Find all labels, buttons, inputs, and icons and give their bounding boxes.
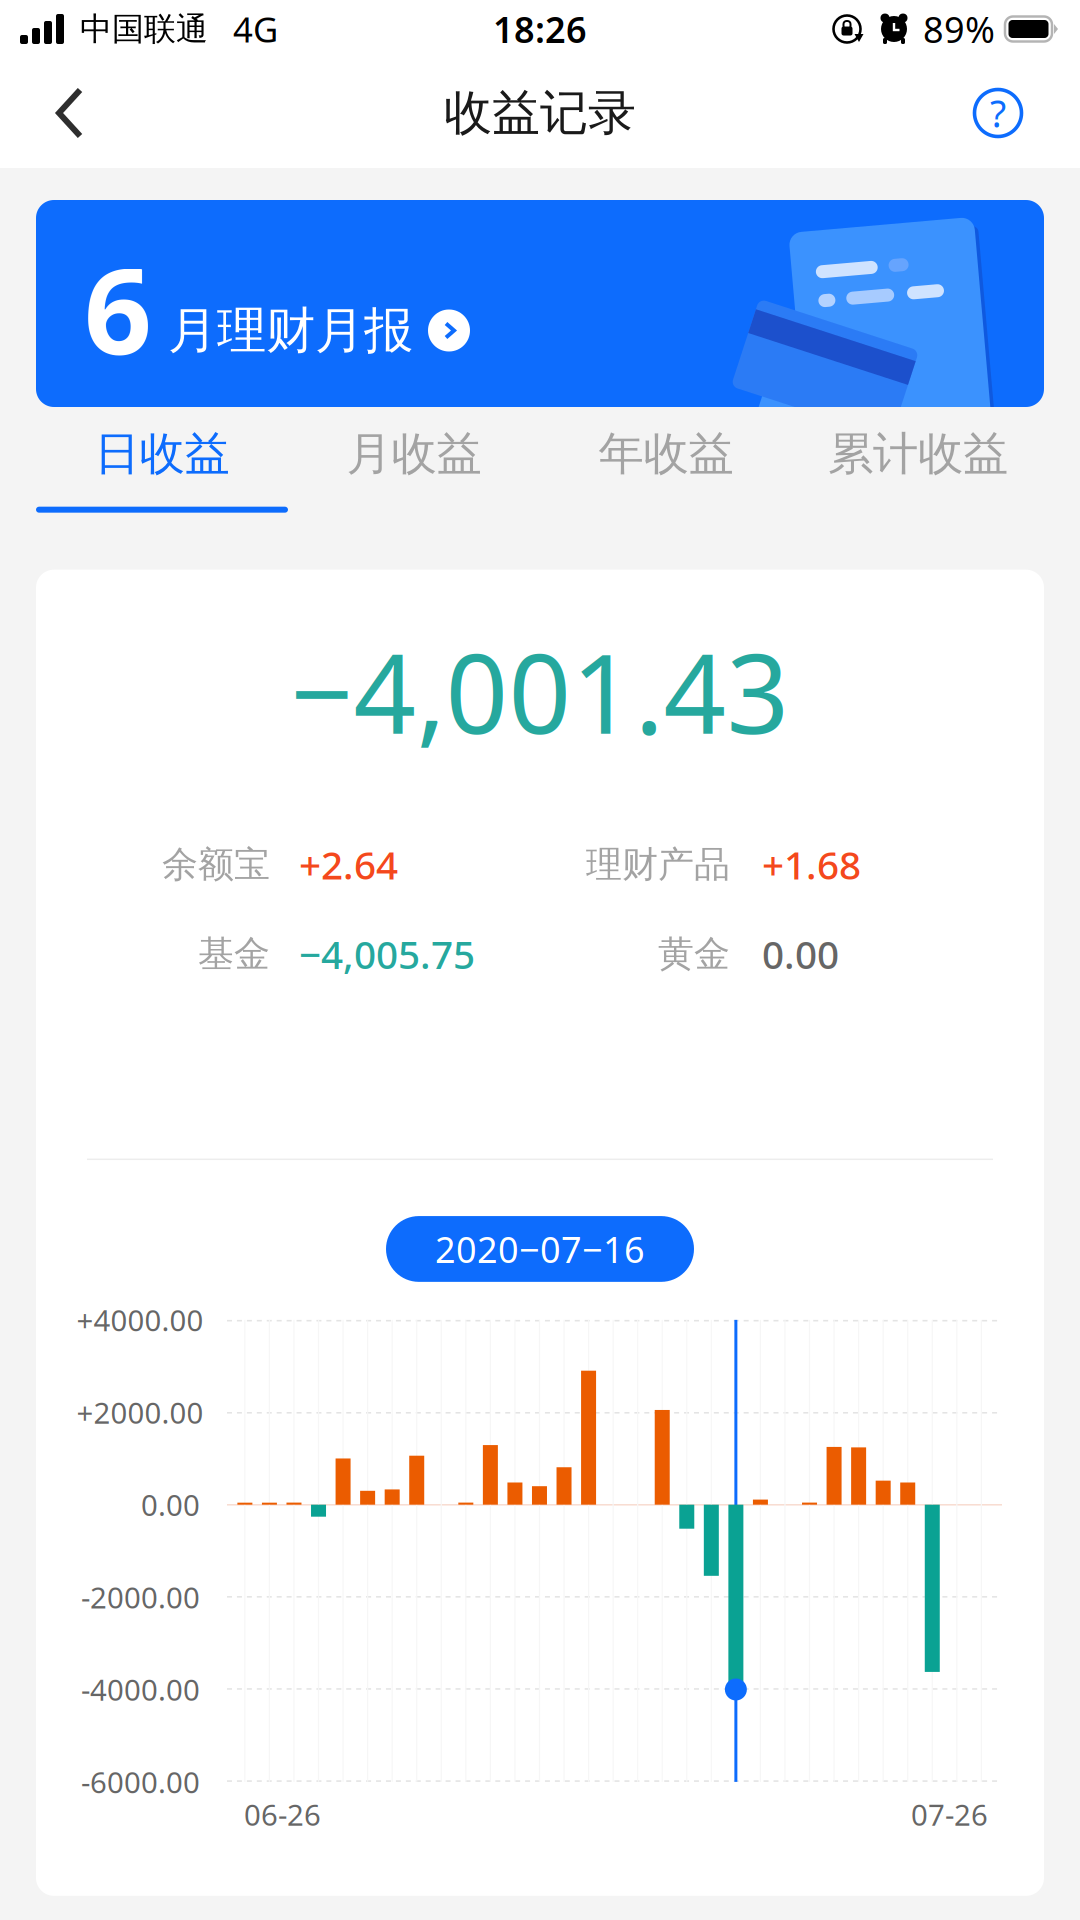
staticText: 07-26 bbox=[911, 1795, 988, 1834]
staticText: 中国联通 bbox=[80, 9, 208, 49]
staticText: 收益记录 bbox=[444, 83, 636, 142]
staticText: 理财产品 bbox=[586, 842, 730, 887]
button[interactable]: 累计收益 bbox=[792, 426, 1044, 513]
staticText: ? bbox=[990, 88, 1006, 138]
staticText: 月理财月报 bbox=[168, 300, 413, 361]
staticText: 累计收益 bbox=[828, 426, 1008, 482]
staticText: 基金 bbox=[198, 932, 270, 976]
button[interactable]: 年收益 bbox=[540, 426, 792, 513]
staticText: 月收益 bbox=[346, 426, 481, 482]
staticText: -6000.00 bbox=[81, 1762, 200, 1801]
staticText: 89% bbox=[923, 5, 995, 53]
staticText: 日收益 bbox=[94, 426, 229, 482]
staticText: 18:26 bbox=[493, 5, 587, 53]
button[interactable]: 月收益 bbox=[288, 426, 540, 513]
staticText: 黄金 bbox=[658, 932, 730, 976]
staticText: 4G bbox=[233, 6, 278, 52]
staticText: 2020−07−16 bbox=[435, 1225, 645, 1273]
staticText: +2000.00 bbox=[76, 1393, 203, 1432]
button[interactable]: 6 bbox=[0, 168, 1080, 407]
staticText: +2.64 bbox=[299, 839, 398, 890]
staticText: 余额宝 bbox=[162, 842, 270, 887]
button[interactable]: Help bbox=[943, 68, 1080, 158]
staticText: 06-26 bbox=[244, 1795, 321, 1834]
staticText: 年收益 bbox=[598, 426, 733, 482]
staticText: +4000.00 bbox=[76, 1300, 203, 1339]
button[interactable]: Back bbox=[0, 65, 100, 161]
staticText: -2000.00 bbox=[81, 1578, 200, 1617]
staticText: +1.68 bbox=[762, 839, 861, 890]
staticText: -4000.00 bbox=[81, 1670, 200, 1709]
staticText: −4,001.43 bbox=[290, 619, 789, 764]
staticText: 0.00 bbox=[141, 1485, 200, 1524]
staticText: −4,005.75 bbox=[299, 928, 475, 979]
button[interactable]: 日收益 bbox=[36, 426, 288, 513]
staticText: 6 bbox=[84, 230, 152, 387]
staticText: 0.00 bbox=[762, 928, 839, 979]
